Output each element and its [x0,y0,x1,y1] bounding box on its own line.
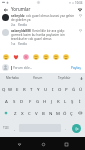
staticText: N [49,110,53,116]
staticText: Ç [70,110,73,116]
button[interactable]: Emoji [1,52,11,62]
button[interactable]: Like [78,29,83,34]
button[interactable]: Ş [69,95,76,107]
button[interactable]: Emoji [11,52,21,62]
button[interactable]: Like [78,14,83,19]
button[interactable]: E [14,83,21,95]
button[interactable]: N [47,107,54,119]
button[interactable]: W [7,83,14,95]
staticText: . [65,126,66,131]
button[interactable]: O [56,83,63,95]
staticText: E [16,86,19,92]
staticText: Yanıtla [18,42,27,46]
button[interactable]: D [18,95,26,107]
button[interactable]: Z [11,107,19,119]
button[interactable]: V [33,107,40,119]
button[interactable]: Ç [68,107,75,119]
staticText: Yorum [33,76,43,80]
button[interactable]: L [62,95,69,107]
button[interactable]: Ğ [70,83,77,95]
button[interactable]: Y [35,83,42,95]
staticText: aslanyldz888 Kesinlikle bir ara gidip go… [11,29,75,41]
staticText: Z [14,110,17,116]
button[interactable]: I [49,83,56,95]
button[interactable]: Home [38,139,48,149]
button[interactable]: A [2,95,10,107]
staticText: ?123 [3,126,9,130]
button[interactable]: F [26,95,34,107]
button[interactable]: Yorum ekle… [11,66,70,70]
button[interactable]: P [63,83,70,95]
staticText: Paylaş [71,66,81,70]
button[interactable]: Send [76,6,83,13]
staticText: , [14,126,15,131]
button[interactable]: Yanıtla [18,23,27,27]
button[interactable]: Paylaş [70,65,82,71]
button[interactable]: ?123 [1,119,11,137]
staticText: G [36,98,40,104]
button[interactable]: Emoji [61,52,71,62]
button[interactable]: K [55,95,62,107]
staticText: P [65,86,68,92]
button[interactable]: Emoji [51,52,61,62]
button[interactable]: Ö [61,107,68,119]
staticText: W [8,86,13,92]
button[interactable]: Voice input [77,73,85,83]
button[interactable]: Send [69,119,84,137]
staticText: V [35,110,38,116]
button[interactable]: Merhaba [0,73,25,83]
staticText: X [21,110,24,116]
staticText: Ğ [72,86,76,92]
button[interactable]: Emoji [41,52,51,62]
staticText: İ [79,98,81,104]
button[interactable]: U [42,83,49,95]
button[interactable]: Recents [61,139,71,149]
button[interactable]: Emoji [31,52,41,62]
button[interactable]: aslanyldz888 Kesinlikle bir ara gidip go… [0,29,85,46]
button[interactable]: M [54,107,61,119]
button[interactable]: X [19,107,26,119]
staticText: J [51,98,53,104]
staticText: A [5,98,8,104]
button[interactable]: Yanıtla [18,42,27,46]
staticText: Ö [63,110,67,116]
staticText: H [43,98,47,104]
staticText: S [13,98,16,104]
button[interactable]: Back [14,139,24,149]
button[interactable]: J [48,95,55,107]
button[interactable]: , [11,119,18,137]
button[interactable]: H [41,95,48,107]
button[interactable]: Backspace [75,107,84,119]
staticText: U [44,86,48,92]
button[interactable]: C [26,107,33,119]
button[interactable]: G [34,95,41,107]
button[interactable]: Teşekkür [51,73,77,83]
button[interactable]: İ [76,95,83,107]
staticText: Ü [79,86,83,92]
staticText: selinyldz cok guzel olmus burasi yaz gel… [11,14,75,22]
button[interactable]: T [28,83,35,95]
button[interactable]: Yorum [25,73,51,83]
button[interactable]: Ü [77,83,84,95]
staticText: Ş [71,98,74,104]
button[interactable]: B [40,107,47,119]
button[interactable]: Emoji [21,52,31,62]
staticText: 1sa [11,42,16,46]
button[interactable]: Back [2,6,9,13]
button[interactable]: Shift [1,107,11,119]
staticText: O [58,86,62,92]
button[interactable]: S [10,95,18,107]
button[interactable]: selinyldz cok guzel olmus burasi yaz gel… [0,14,85,27]
staticText: Yorumlar [11,6,31,12]
staticText: 10:34 [75,1,83,5]
staticText: Yorum ekle… [13,66,33,70]
staticText: B [42,110,45,116]
button[interactable]: R [21,83,28,95]
staticText: Teşekkür [58,76,71,80]
staticText: 2sa [11,23,16,27]
staticText: I [52,86,54,92]
button[interactable]: Q [1,83,7,95]
staticText: Merhaba [6,76,19,80]
